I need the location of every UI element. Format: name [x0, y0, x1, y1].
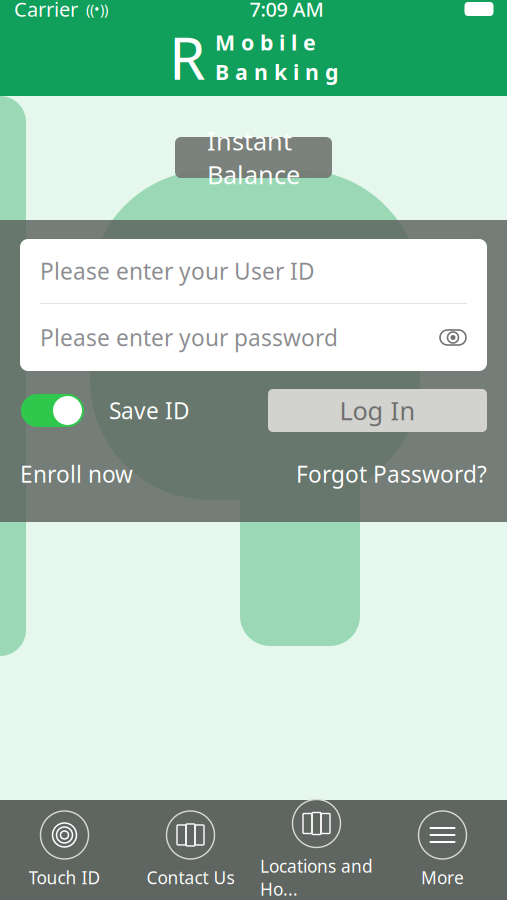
button[interactable]: Touch ID — [1, 800, 127, 900]
button[interactable]: Save ID — [21, 394, 84, 427]
button[interactable]: Enroll now — [20, 459, 133, 489]
staticText: Please enter your User ID — [40, 256, 315, 286]
staticText: Touch ID — [28, 866, 100, 889]
button[interactable]: Log In — [268, 389, 487, 432]
staticText: Instant Balance — [207, 124, 300, 191]
staticText: Contact Us — [146, 866, 234, 889]
staticText: Log In — [339, 394, 415, 427]
staticText: Locations and Ho... — [260, 854, 373, 900]
staticText: More — [421, 866, 464, 889]
staticText: Forgot Password? — [296, 459, 487, 489]
button[interactable]: Forgot Password? — [296, 459, 487, 489]
staticText: Save ID — [109, 395, 190, 425]
staticText: ((•)) — [78, 0, 108, 19]
staticText: Please enter your password — [40, 322, 338, 352]
staticText: Enroll now — [20, 459, 133, 489]
button[interactable]: Please enter your password — [20, 304, 487, 371]
staticText: M o b i l e — [215, 28, 316, 56]
button[interactable]: Locations and Ho... — [253, 800, 379, 900]
staticText: B a n k i n g — [215, 57, 338, 86]
button[interactable]: Contact Us — [127, 800, 253, 900]
staticText: 7:09 AM — [249, 0, 323, 22]
staticText: Carrier — [14, 0, 78, 22]
button[interactable]: Instant Balance — [175, 137, 332, 178]
button[interactable]: Please enter your User ID — [20, 239, 487, 303]
button[interactable]: More — [379, 800, 505, 900]
staticText: R — [169, 18, 205, 96]
